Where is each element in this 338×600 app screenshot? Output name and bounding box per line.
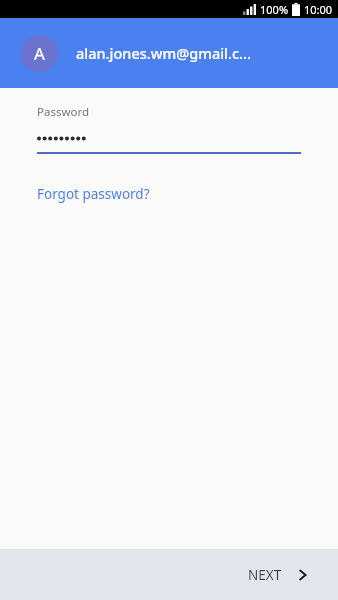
staticText: 100% (260, 2, 289, 17)
other: Next (296, 568, 310, 582)
button[interactable]: NEXT (0, 566, 338, 584)
button[interactable]: Password (0, 104, 338, 154)
button[interactable]: Forgot password? (0, 183, 166, 205)
staticText: 10:00 (304, 2, 333, 17)
staticText: Forgot password? (37, 185, 150, 203)
button[interactable]: A (0, 18, 338, 88)
staticText: Password (37, 104, 90, 120)
staticText: A (34, 42, 45, 65)
staticText: alan.jones.wm@gmail.c... (76, 43, 251, 63)
staticText: NEXT (248, 566, 282, 584)
